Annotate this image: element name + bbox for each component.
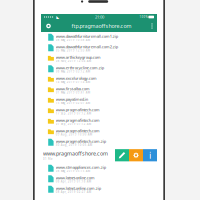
staticText: www.pragmafintech.com bbox=[56, 107, 100, 112]
staticText: www.pragmafintech.com bbox=[56, 118, 100, 123]
staticText: 17 Sep, 2019 07:12 AM bbox=[56, 112, 91, 115]
button[interactable]: www.arthickeygroup.com bbox=[41, 53, 157, 63]
staticText: www.stmappliances.com.zip bbox=[56, 165, 106, 170]
staticText: www.excelurology.com bbox=[56, 76, 97, 81]
staticText: www.erthrocycline.com.zip bbox=[56, 65, 104, 70]
staticText: 100% bbox=[140, 15, 148, 19]
staticText: 08 Nov, 2019 12:04 AM bbox=[56, 59, 91, 63]
staticText: 14 May, 2019 07:14 AM bbox=[56, 80, 90, 84]
staticText: www.dawathfurnituremall.com1.zip bbox=[56, 34, 118, 39]
staticText: 09 Aug, 2019 10:00 AM bbox=[56, 133, 92, 136]
staticText: i bbox=[149, 149, 151, 161]
button[interactable]: www.pragmafintech.com bbox=[41, 116, 157, 126]
staticText: www.dawathfurnituremall.com2.zip bbox=[56, 44, 118, 49]
staticText: 08 May, 2019 03:12 AM bbox=[56, 70, 90, 73]
button[interactable]: www.excelurology.com bbox=[41, 74, 157, 84]
button[interactable]: www.erthrocycline.com.zip bbox=[41, 63, 157, 74]
staticText: www.first-alba.com bbox=[56, 86, 90, 91]
button[interactable]: More options bbox=[147, 20, 157, 32]
button[interactable]: Info bbox=[143, 149, 157, 161]
staticText: www.arthickeygroup.com bbox=[56, 55, 101, 60]
staticText: 15 May, 2019 02:07 AM bbox=[56, 101, 90, 105]
button[interactable]: www.first-alba.com bbox=[41, 84, 157, 95]
button[interactable]: www.pragmafintech.com bbox=[41, 105, 157, 116]
staticText: www.latnet-online.com bbox=[56, 175, 95, 180]
staticText: 05 May, 2019 12:03 AM bbox=[56, 49, 90, 52]
staticText: ◣ bbox=[56, 15, 59, 19]
button[interactable]: www.pragmafintech.com bbox=[41, 126, 157, 137]
staticText: 01 May, 2019 09:41 AM bbox=[56, 91, 90, 94]
staticText: www.pragmaoffshore.com bbox=[43, 150, 108, 157]
staticText: 21:00 bbox=[95, 14, 104, 20]
staticText: 01 File bbox=[43, 157, 53, 161]
button[interactable]: www.stmappliances.com.zip bbox=[41, 163, 157, 173]
button[interactable]: www.dawathfurnituremall.com1.zip bbox=[41, 32, 157, 42]
button[interactable]: www.payatimed.in bbox=[41, 95, 157, 105]
staticText: www.latnet-online.com.zip bbox=[56, 186, 101, 191]
button[interactable]: Settings bbox=[129, 149, 143, 161]
button[interactable]: Edit bbox=[115, 149, 129, 161]
staticText: 08 Apr, 2019 02:27 AM bbox=[56, 190, 91, 194]
staticText: 07 Sep, 2019 07:12 AM bbox=[56, 122, 91, 126]
staticText: 30 Aug, 2019 10:05 AM bbox=[56, 143, 92, 147]
staticText: 08 May, 2019 05:15 AM bbox=[56, 169, 90, 173]
button[interactable]: Refresh bbox=[41, 20, 56, 32]
staticText: 08 Apr, 2019 01:18 AM bbox=[56, 180, 91, 183]
staticText: www.pragmafintech.com.zip bbox=[56, 139, 106, 144]
button[interactable]: www.pragmafintech.com.zip bbox=[41, 137, 157, 147]
staticText: ftp.pragmaoffshore.com bbox=[71, 22, 131, 30]
staticText: www.pragmafintech.com bbox=[56, 128, 100, 133]
staticText: www.payatimed.in bbox=[56, 97, 88, 102]
staticText: 08 May, 2019 10:38 AM bbox=[56, 38, 90, 42]
button[interactable]: www.dawathfurnituremall.com2.zip bbox=[41, 42, 157, 53]
button[interactable]: www.latnet-online.com bbox=[41, 173, 157, 184]
button[interactable]: www.latnet-online.com.zip bbox=[41, 184, 157, 194]
